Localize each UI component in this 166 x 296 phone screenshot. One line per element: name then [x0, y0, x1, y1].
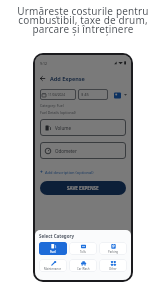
button[interactable]: Fuel [39, 242, 67, 255]
button[interactable]: Other [99, 259, 127, 272]
staticText: Add description (optional) [45, 170, 94, 175]
button[interactable]: Volume [40, 119, 126, 136]
staticText: $ 45 [81, 92, 89, 97]
staticText: Add Expense [50, 75, 85, 82]
button[interactable]: Maintenance [39, 259, 67, 272]
staticText: SAVE EXPENSE [67, 185, 99, 191]
staticText: 11/04/2024 [48, 93, 65, 97]
staticText: Tolls [80, 250, 86, 254]
button[interactable]: + [40, 169, 94, 176]
staticText: Category: Fuel [40, 103, 64, 108]
staticText: Parking [108, 250, 119, 254]
button[interactable] [40, 76, 45, 81]
staticText: Urmărește costurile pentru combustibil, … [0, 4, 166, 36]
button[interactable]: Tolls [69, 242, 97, 255]
staticText: Select Category [39, 233, 75, 239]
staticText: 9:12 [40, 61, 47, 66]
staticText: Other [109, 267, 117, 271]
staticText: Volume [55, 125, 72, 131]
staticText: Odometer [55, 148, 77, 154]
button[interactable]: Odometer [40, 142, 126, 159]
button[interactable]: Parking [99, 242, 127, 255]
staticText: Fuel [50, 250, 56, 254]
button[interactable] [113, 91, 121, 99]
button[interactable]: SAVE EXPENSE [40, 181, 126, 195]
button[interactable]: Car Wash [69, 259, 97, 272]
staticText: Car Wash [77, 267, 90, 271]
staticText: + [40, 169, 43, 176]
button[interactable]: $ 45 [78, 89, 108, 100]
staticText: Maintenance [44, 267, 62, 271]
button[interactable]: 11/04/2024 [40, 89, 76, 100]
staticText: Fuel Details (optional) [40, 110, 76, 115]
